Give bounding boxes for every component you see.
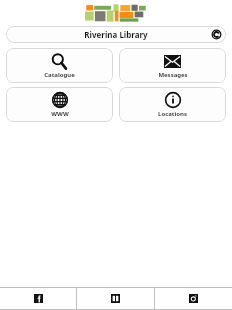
staticText: Catalogue: [44, 71, 75, 79]
staticText: WWW: [51, 110, 69, 118]
staticText: Riverina Library: [84, 29, 148, 40]
button[interactable]: Instagram: [155, 288, 232, 309]
button[interactable]: Facebook: [0, 288, 76, 309]
button[interactable]: Locations: [119, 87, 226, 122]
button[interactable]: Messages: [119, 48, 226, 83]
button[interactable]: Riverina Library: [6, 26, 226, 43]
staticText: Messages: [158, 71, 188, 79]
button[interactable]: Refresh: [211, 29, 222, 40]
button[interactable]: Library catalogue: [77, 288, 154, 309]
staticText: Locations: [158, 110, 187, 118]
button[interactable]: Catalogue: [6, 48, 113, 83]
button[interactable]: WWW: [6, 87, 113, 122]
